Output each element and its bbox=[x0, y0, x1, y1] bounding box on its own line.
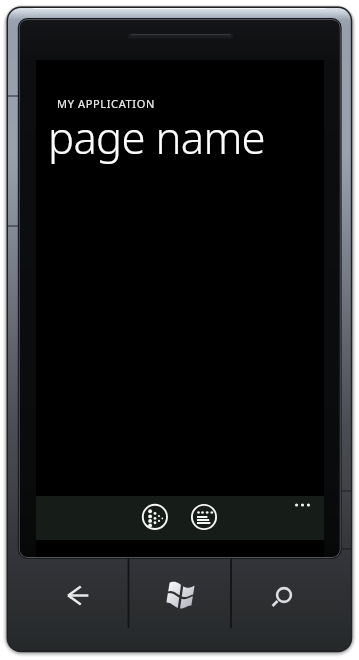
button[interactable]: Start bbox=[128, 557, 231, 632]
button[interactable]: Sort bbox=[141, 503, 169, 531]
staticText: MY APPLICATION bbox=[57, 96, 156, 111]
button[interactable]: Back bbox=[12, 557, 128, 632]
button[interactable]: Search bbox=[231, 557, 347, 632]
button[interactable]: Notes bbox=[190, 503, 218, 531]
staticText: page name bbox=[48, 107, 265, 166]
button[interactable]: More options bbox=[286, 496, 320, 518]
